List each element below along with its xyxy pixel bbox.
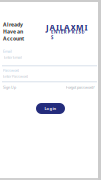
staticText: JAILAXMI — [46, 22, 87, 33]
staticText: Email — [3, 49, 12, 54]
staticText: Login — [44, 106, 56, 111]
staticText: Account — [3, 35, 24, 42]
staticText: ENTERPRISES — [51, 29, 86, 35]
button[interactable]: Sign Up — [3, 85, 16, 90]
staticText: Enter Password — [3, 74, 28, 79]
staticText: Already — [3, 21, 23, 28]
staticText: Enter Email — [4, 55, 22, 60]
button[interactable]: Forgot password? — [66, 85, 95, 90]
staticText: Have an — [3, 28, 23, 35]
staticText: Password — [3, 68, 19, 73]
staticText: Sign Up — [3, 85, 16, 90]
staticText: Forgot password? — [66, 85, 95, 90]
button[interactable]: Login — [36, 103, 65, 114]
